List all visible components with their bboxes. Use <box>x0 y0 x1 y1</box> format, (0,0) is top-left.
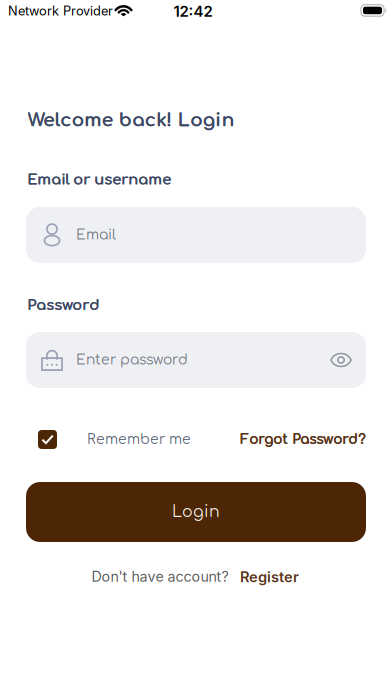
button[interactable]: Login <box>26 482 366 542</box>
staticText: Password <box>28 297 100 313</box>
staticText: Forgot Password? <box>241 432 367 447</box>
button[interactable]: Forgot Password? <box>240 432 380 447</box>
button[interactable]: Email <box>26 207 366 263</box>
staticText: Network Provider <box>8 3 113 19</box>
staticText: Remember me <box>87 432 191 447</box>
button[interactable]: Remember me <box>38 430 191 449</box>
staticText: Email <box>76 227 116 243</box>
staticText: Welcome back! Login <box>27 110 234 130</box>
staticText: 12:42 <box>173 2 212 20</box>
staticText: Forgot Password? <box>240 432 366 447</box>
staticText: Register <box>240 568 299 586</box>
button[interactable]: Enter password <box>26 332 366 388</box>
button[interactable]: Show password <box>330 352 366 367</box>
staticText: Login <box>172 503 220 521</box>
staticText: Enter password <box>76 352 188 368</box>
staticText: Welcome back! Login <box>28 110 235 130</box>
staticText: Email or username <box>28 171 172 188</box>
staticText: Don't have account? <box>91 568 228 585</box>
staticText: Email or username <box>27 171 171 188</box>
button[interactable]: Register <box>240 568 299 586</box>
staticText: Password <box>27 297 99 313</box>
